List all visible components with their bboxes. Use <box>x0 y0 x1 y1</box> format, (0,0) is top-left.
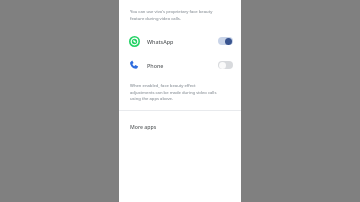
button[interactable]: Toggle off <box>218 61 233 69</box>
button[interactable]: More apps <box>119 121 241 132</box>
button[interactable]: Phone <box>119 53 241 77</box>
staticText: Phone <box>147 62 164 69</box>
staticText: When enabled, face beauty effect adjustm… <box>130 83 217 101</box>
button[interactable]: WhatsApp <box>119 29 241 53</box>
staticText: WhatsApp <box>147 38 174 45</box>
button[interactable]: Toggle on <box>218 37 233 45</box>
staticText: You can use vivo's proprietary face beau… <box>130 9 213 21</box>
staticText: More apps <box>130 123 157 130</box>
